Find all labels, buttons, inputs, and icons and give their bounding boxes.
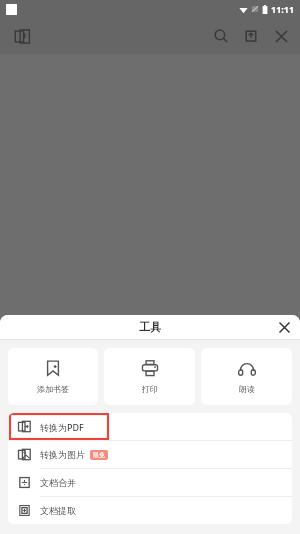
- staticText: 添加书签: [37, 384, 69, 394]
- button[interactable]: 打印: [104, 348, 195, 405]
- button[interactable]: 转换为PDF: [8, 413, 292, 440]
- button[interactable]: 添加书签: [8, 348, 98, 405]
- staticText: 限免: [93, 451, 105, 459]
- staticText: 打印: [142, 384, 158, 394]
- button[interactable]: 朗读: [201, 348, 292, 405]
- button[interactable]: Close: [266, 21, 296, 51]
- button[interactable]: 转换为图片: [8, 441, 292, 468]
- staticText: 转换为PDF: [40, 421, 84, 433]
- button[interactable]: 文档提取: [8, 497, 292, 524]
- button[interactable]: Share: [236, 21, 266, 51]
- staticText: 工具: [139, 320, 161, 334]
- staticText: 转换为图片: [40, 449, 85, 460]
- button[interactable]: Documents: [8, 22, 36, 50]
- button[interactable]: Close tools: [274, 317, 294, 337]
- button[interactable]: 文档合并: [8, 469, 292, 496]
- staticText: 文档合并: [40, 477, 76, 488]
- staticText: 朗读: [239, 384, 255, 394]
- button[interactable]: Search: [206, 21, 236, 51]
- staticText: 文档提取: [40, 505, 76, 516]
- staticText: 11:11: [271, 3, 295, 15]
